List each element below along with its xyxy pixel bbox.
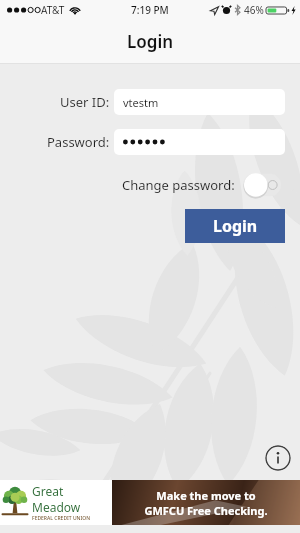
button[interactable]: Change password toggle [241,171,285,199]
staticText: Password: [47,133,110,151]
button[interactable]: Information [265,445,291,471]
button[interactable]: Great Meadow [0,480,300,525]
staticText: AT&T [41,3,65,17]
staticText: Change password: [122,176,235,194]
staticText: User ID: [60,93,110,111]
staticText: 46% [244,3,264,17]
button[interactable]: Login [185,209,285,243]
staticText: vtestm [123,95,159,110]
staticText: 7:19 PM [131,3,169,17]
staticText: FEDERAL CREDIT UNION [32,515,91,522]
button[interactable]: Change password: [122,171,285,199]
button[interactable] [114,129,285,155]
staticText: Great Meadow [32,483,112,515]
staticText: Login [213,215,258,237]
staticText: Login [127,30,174,53]
button[interactable]: vtestm [114,89,285,115]
staticText: GMFCU Free Checking. [144,503,268,518]
staticText: Make the move to [156,488,256,503]
